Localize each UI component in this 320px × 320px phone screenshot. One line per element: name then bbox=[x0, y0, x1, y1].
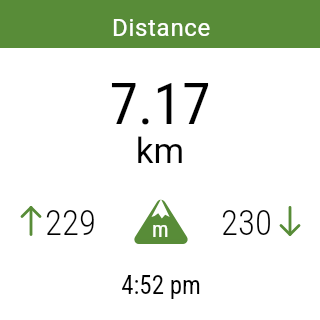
staticText: Distance bbox=[112, 14, 212, 42]
staticText: 7.17 bbox=[0, 70, 320, 138]
other: Descent bbox=[280, 206, 300, 236]
button[interactable]: Distance bbox=[0, 0, 320, 48]
staticText: 229 bbox=[45, 203, 97, 243]
staticText: 230 bbox=[221, 203, 273, 243]
button[interactable]: Elevation in metres bbox=[133, 197, 189, 244]
staticText: 4:52 pm bbox=[1, 271, 320, 300]
button[interactable]: Ascent bbox=[21, 203, 97, 243]
other: Ascent bbox=[21, 206, 41, 236]
staticText: km bbox=[0, 131, 320, 172]
button[interactable]: 230 bbox=[221, 203, 299, 243]
staticText: m bbox=[152, 217, 169, 243]
